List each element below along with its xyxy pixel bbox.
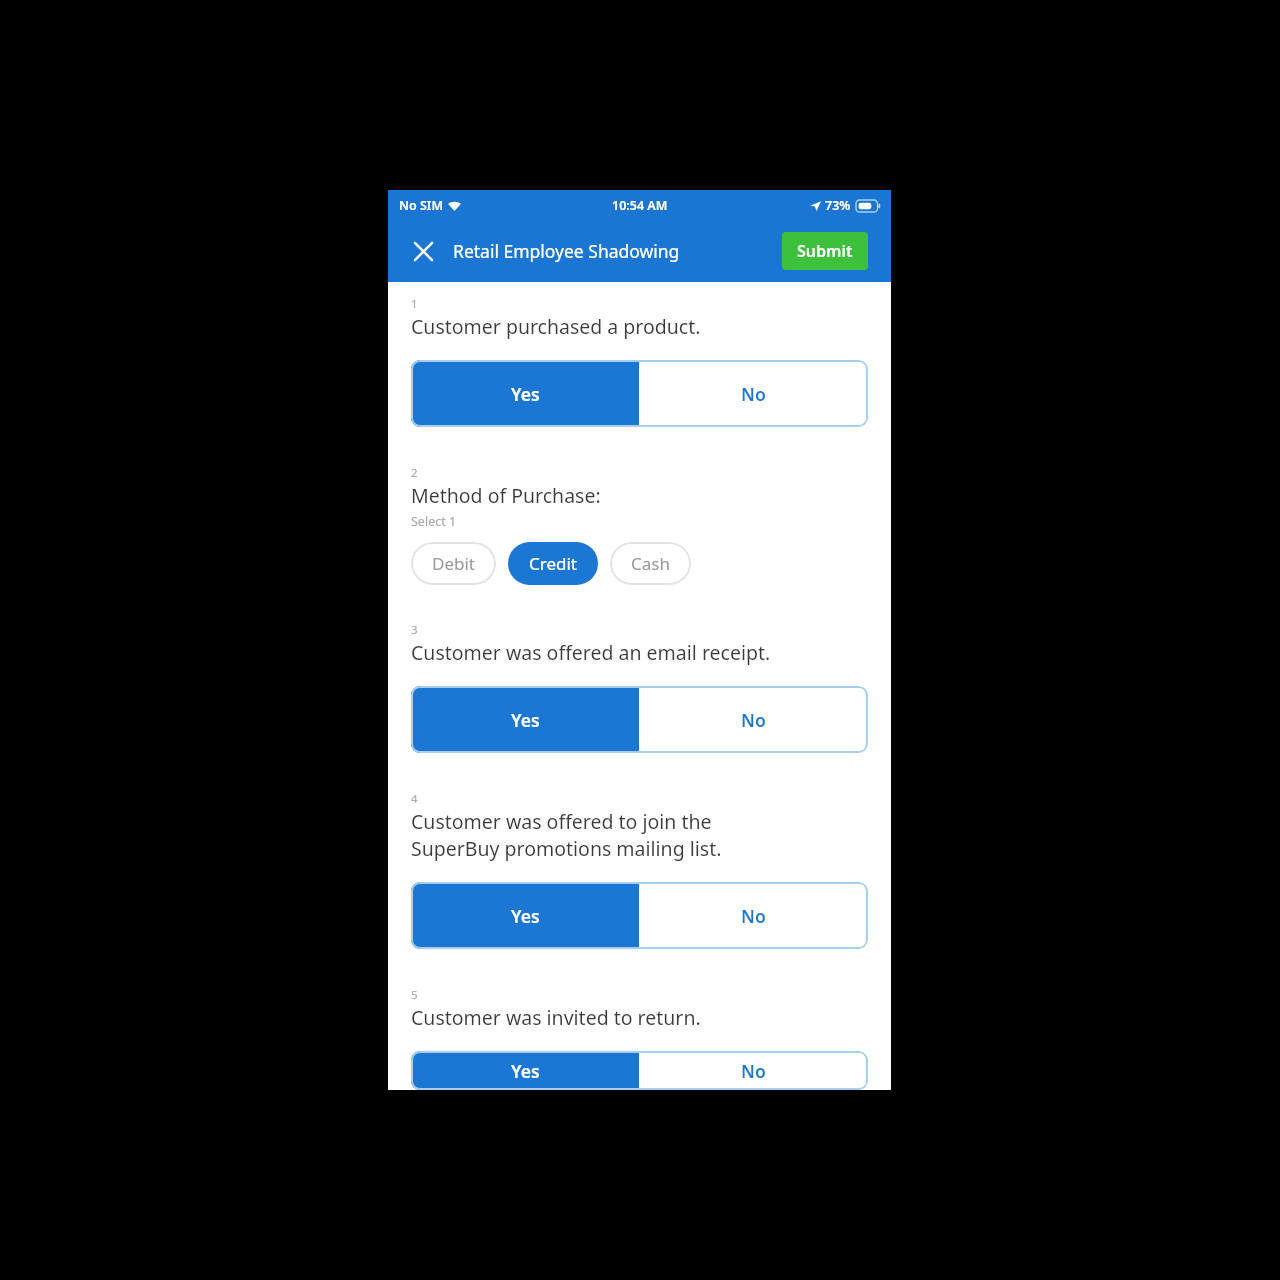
staticText: Yes [511,1059,540,1083]
staticText: 73% [825,197,851,214]
staticText: No [741,1059,766,1083]
button[interactable]: No [639,1051,868,1090]
staticText: 5 [411,987,418,1003]
staticText: Retail Employee Shadowing [453,239,680,263]
staticText: Credit [529,552,577,575]
staticText: Customer was offered an email receipt. [411,639,771,666]
staticText: 4 [411,791,418,807]
staticText: Cash [631,552,670,575]
staticText: Customer was invited to return. [411,1004,701,1031]
staticText: Debit [432,552,475,575]
staticText: 10:54 AM [612,197,668,214]
staticText: No SIM [399,197,443,214]
staticText: Customer purchased a product. [411,313,701,340]
staticText: No [741,904,766,928]
staticText: No [741,708,766,732]
button[interactable]: Cash [610,542,691,585]
button[interactable]: Yes [411,882,639,949]
button[interactable]: No [639,686,868,753]
staticText: Submit [797,240,853,262]
staticText: 3 [411,622,418,638]
button[interactable]: Debit [411,542,496,585]
staticText: Yes [511,904,540,928]
button[interactable]: Yes [411,686,639,753]
button[interactable]: No [639,882,868,949]
button[interactable]: No [639,360,868,427]
button[interactable]: Credit [508,542,598,585]
button[interactable]: Close [406,234,440,268]
staticText: Select 1 [411,513,457,530]
staticText: Method of Purchase: [411,482,601,509]
button[interactable]: Submit [782,232,868,270]
staticText: Yes [511,708,540,732]
staticText: No [741,382,766,406]
button[interactable]: Yes [411,360,639,427]
staticText: Yes [511,382,540,406]
button[interactable]: Yes [411,1051,639,1090]
staticText: 1 [411,296,418,312]
staticText: 2 [411,465,418,481]
staticText: Customer was offered to join the SuperBu… [411,808,722,862]
